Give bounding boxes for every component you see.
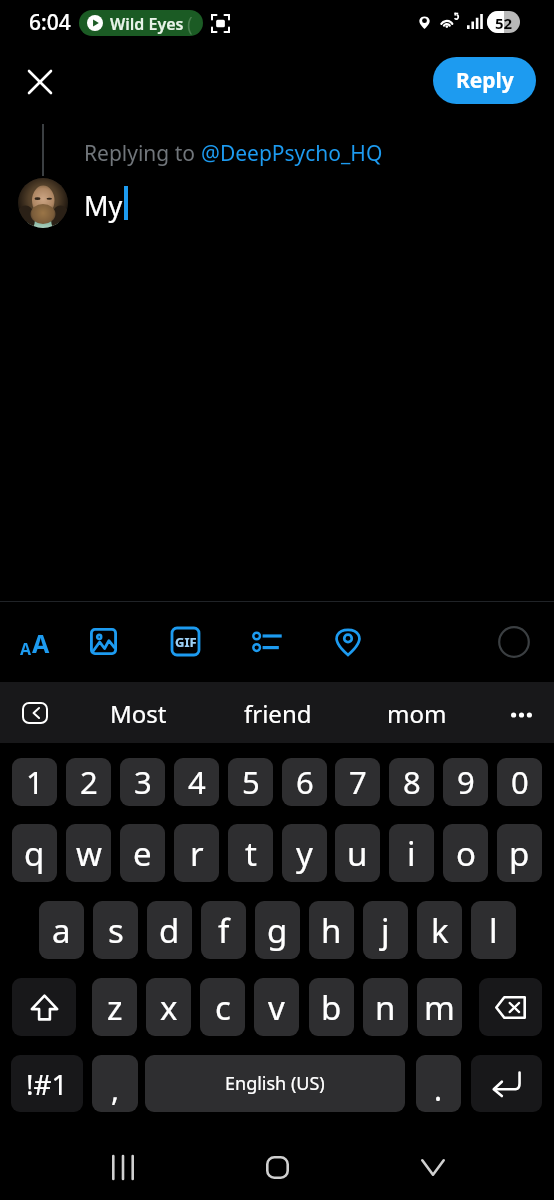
staticText: m (424, 985, 455, 1030)
staticText: a (52, 908, 71, 953)
button[interactable]: n (363, 978, 408, 1036)
button[interactable]: English (US) (145, 1055, 405, 1112)
button[interactable]: Previous suggestions (16, 698, 53, 728)
button[interactable]: 4 (174, 758, 219, 806)
button[interactable]: Profile picture (18, 178, 68, 228)
button[interactable]: 5 (228, 758, 273, 806)
button[interactable]: Home (253, 1143, 301, 1191)
button[interactable]: Text format (17, 624, 53, 660)
button[interactable]: mom (347, 692, 487, 734)
staticText: 6:04 (29, 8, 71, 37)
button[interactable]: t (228, 824, 273, 882)
button[interactable]: d (147, 901, 192, 959)
button[interactable]: u (335, 824, 380, 882)
staticText: u (347, 831, 368, 876)
button[interactable]: e (120, 824, 165, 882)
staticText: e (133, 831, 152, 876)
button[interactable]: Shift (12, 978, 76, 1036)
button[interactable]: More options (504, 698, 538, 732)
staticText: o (456, 831, 476, 876)
staticText: !#1 (26, 1065, 68, 1103)
button[interactable]: f (201, 901, 246, 959)
button[interactable]: Backspace (479, 978, 542, 1036)
staticText: . (434, 1069, 443, 1110)
button[interactable]: GIF (167, 623, 203, 659)
button[interactable]: Location (329, 623, 366, 660)
staticText: 7 (349, 761, 367, 803)
button[interactable]: b (309, 978, 354, 1036)
button[interactable]: x (146, 978, 191, 1036)
button[interactable]: Character count (491, 619, 536, 664)
button[interactable]: z (92, 978, 137, 1036)
button[interactable]: , (92, 1055, 138, 1112)
button[interactable]: y (282, 824, 327, 882)
staticText: c (215, 985, 231, 1030)
button[interactable]: !#1 (11, 1055, 83, 1112)
button[interactable]: r (174, 824, 219, 882)
staticText: t (245, 831, 257, 876)
button[interactable]: Hide keyboard (409, 1143, 457, 1191)
staticText: 6 (296, 761, 314, 803)
button[interactable]: 1 (12, 758, 57, 806)
button[interactable]: m (417, 978, 462, 1036)
button[interactable]: Reply (433, 57, 536, 104)
staticText: h (321, 908, 342, 953)
button[interactable]: 7 (335, 758, 380, 806)
staticText: , (111, 1069, 120, 1110)
staticText: r (190, 831, 204, 876)
button[interactable]: Close (16, 58, 64, 106)
button[interactable]: g (255, 901, 300, 959)
button[interactable]: j (363, 901, 408, 959)
staticText: 4 (188, 761, 206, 803)
staticText: GIF (175, 633, 197, 651)
button[interactable]: q (12, 824, 57, 882)
staticText: English (US) (225, 1071, 325, 1096)
staticText: 0 (511, 761, 529, 803)
staticText: p (509, 831, 530, 876)
staticText: v (268, 985, 285, 1030)
staticText: g (267, 908, 288, 953)
button[interactable]: Recents (99, 1143, 147, 1191)
button[interactable]: 3 (120, 758, 165, 806)
staticText: A (32, 626, 50, 660)
button[interactable]: Most (68, 692, 208, 734)
staticText: Replying to (84, 139, 201, 168)
staticText: Wild Eyes (110, 13, 184, 35)
staticText: @DeepPsycho_HQ (201, 139, 383, 168)
staticText: Most (110, 697, 167, 730)
staticText: l (489, 908, 498, 953)
staticText: b (321, 985, 342, 1030)
staticText: q (24, 831, 45, 876)
button[interactable]: l (471, 901, 516, 959)
button[interactable]: 8 (389, 758, 434, 806)
button[interactable]: a (39, 901, 84, 959)
button[interactable]: o (443, 824, 488, 882)
button[interactable]: k (417, 901, 462, 959)
button[interactable]: . (416, 1055, 461, 1112)
button[interactable]: 2 (66, 758, 111, 806)
button[interactable]: 0 (497, 758, 542, 806)
button[interactable]: 6 (282, 758, 327, 806)
button[interactable]: Media (85, 623, 122, 660)
button[interactable]: p (497, 824, 542, 882)
button[interactable]: i (389, 824, 434, 882)
button[interactable]: w (66, 824, 111, 882)
staticText: 3 (134, 761, 152, 803)
staticText: My (84, 187, 123, 224)
button[interactable]: 9 (443, 758, 488, 806)
button[interactable]: Poll (248, 623, 285, 660)
staticText: A (20, 638, 32, 660)
button[interactable]: friend (208, 692, 348, 734)
staticText: Reply (456, 66, 514, 95)
button[interactable]: s (93, 901, 138, 959)
staticText: 5 (242, 761, 260, 803)
button[interactable]: v (254, 978, 299, 1036)
staticText: 9 (457, 761, 475, 803)
button[interactable]: Enter (471, 1055, 542, 1112)
button[interactable]: h (309, 901, 354, 959)
staticText: y (296, 831, 313, 876)
staticText: 8 (403, 761, 421, 803)
staticText: j (381, 908, 390, 953)
button[interactable]: c (200, 978, 245, 1036)
staticText: ( (187, 11, 193, 36)
